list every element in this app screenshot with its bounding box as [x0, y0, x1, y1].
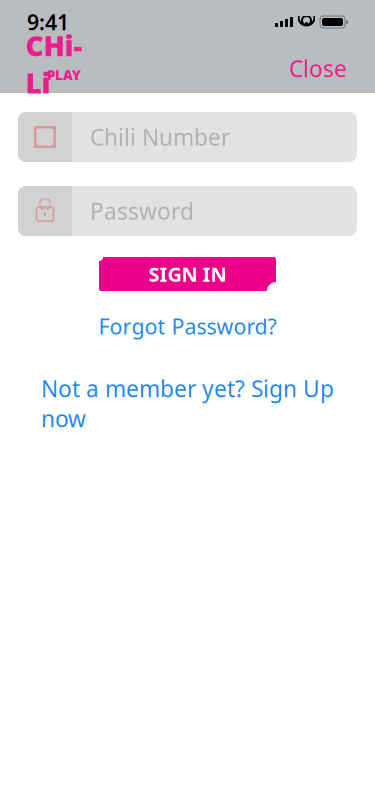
button[interactable]: SIGN IN: [99, 257, 276, 291]
staticText: Not a member yet? Sign Up now: [41, 373, 334, 433]
button[interactable]: Not a member yet? Sign Up now: [33, 368, 342, 438]
button[interactable]: Chili Number: [18, 112, 357, 162]
staticText: Chili Number: [90, 122, 230, 152]
staticText: PLAY: [47, 66, 81, 84]
button[interactable]: Forgot Password?: [90, 307, 284, 345]
staticText: SIGN IN: [148, 261, 226, 287]
staticText: Forgot Password?: [98, 312, 276, 340]
staticText: Password: [90, 196, 194, 226]
staticText: 9:41: [27, 8, 69, 36]
button[interactable]: Close: [283, 47, 353, 89]
staticText: Close: [289, 53, 347, 83]
staticText: CHiLi: [25, 27, 82, 101]
button[interactable]: Password: [18, 186, 357, 236]
